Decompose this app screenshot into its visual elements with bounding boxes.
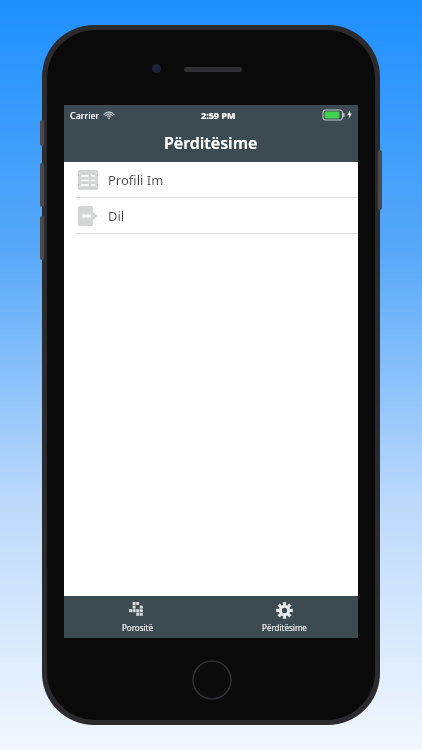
button[interactable]: Dil bbox=[64, 198, 358, 233]
staticText: Përditësime bbox=[262, 622, 307, 633]
staticText: Përditësime bbox=[164, 132, 258, 154]
staticText: 2:59 PM bbox=[201, 109, 236, 121]
staticText: Dil bbox=[108, 207, 125, 225]
staticText: Porositë bbox=[122, 622, 153, 633]
button[interactable]: Profili Im bbox=[64, 162, 358, 197]
button[interactable]: Porositë bbox=[64, 596, 211, 638]
staticText: Profili Im bbox=[108, 171, 164, 189]
staticText: Carrier bbox=[70, 109, 100, 121]
button[interactable]: Përditësime bbox=[211, 596, 358, 638]
